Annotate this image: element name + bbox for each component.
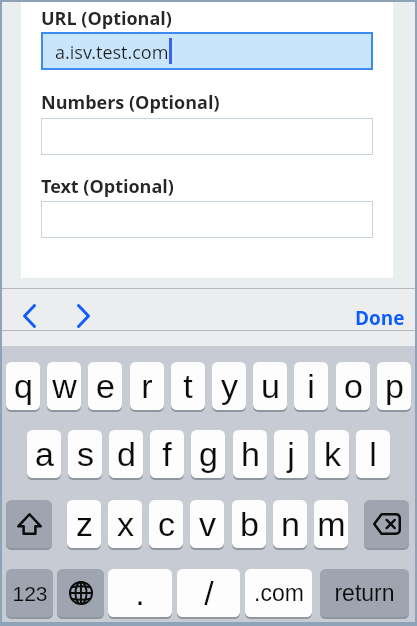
staticText: i (307, 367, 315, 405)
button[interactable]: r (130, 362, 164, 410)
staticText: b (240, 505, 259, 543)
button[interactable]: . (108, 569, 172, 617)
staticText: 123 (12, 582, 48, 605)
staticText: v (199, 505, 216, 543)
button[interactable]: y (212, 362, 246, 410)
staticText: w (52, 367, 77, 405)
staticText: y (221, 367, 238, 405)
staticText: .com (254, 580, 304, 606)
button[interactable]: s (68, 430, 102, 478)
staticText: . (135, 574, 145, 612)
button[interactable]: v (190, 500, 224, 548)
staticText: m (317, 505, 346, 543)
button[interactable]: Done (341, 289, 415, 330)
button[interactable]: m (314, 500, 348, 548)
button[interactable]: u (253, 362, 287, 410)
staticText: l (369, 435, 377, 473)
staticText: q (14, 367, 33, 405)
staticText: / (204, 574, 214, 612)
staticText: c (158, 505, 175, 543)
button[interactable]: k (315, 430, 349, 478)
staticText: x (117, 505, 134, 543)
staticText: Done (355, 305, 405, 331)
button[interactable]: g (191, 430, 225, 478)
button[interactable]: a.isv.test.com (41, 32, 373, 70)
button[interactable]: Backspace (364, 500, 409, 548)
staticText: g (199, 435, 218, 473)
staticText: t (183, 367, 193, 405)
button[interactable]: f (150, 430, 184, 478)
button[interactable]: Return (320, 569, 409, 617)
button[interactable]: z (67, 500, 101, 548)
button[interactable]: d (109, 430, 143, 478)
button[interactable]: a (27, 430, 61, 478)
button[interactable]: l (356, 430, 390, 478)
button[interactable]: / (177, 569, 240, 617)
button[interactable]: w (47, 362, 81, 410)
staticText: return (334, 580, 395, 606)
staticText: a (35, 435, 54, 473)
button[interactable]: p (377, 362, 411, 410)
staticText: URL (Optional) (41, 6, 172, 31)
staticText: Text (Optional) (41, 174, 174, 199)
button[interactable]: c (149, 500, 183, 548)
staticText: a.isv.test.com (55, 40, 169, 65)
staticText: p (385, 367, 404, 405)
button[interactable]: b (232, 500, 266, 548)
staticText: n (281, 505, 300, 543)
button[interactable] (41, 201, 373, 238)
staticText: o (344, 367, 363, 405)
button[interactable]: Previous field (7, 289, 53, 330)
staticText: u (261, 367, 280, 405)
button[interactable]: t (171, 362, 205, 410)
button[interactable]: Numbers (6, 569, 53, 617)
button[interactable]: Next field (62, 289, 108, 330)
button[interactable]: x (108, 500, 142, 548)
staticText: k (324, 435, 341, 473)
button[interactable]: q (6, 362, 40, 410)
button[interactable]: Shift (6, 500, 52, 548)
staticText: j (287, 435, 295, 473)
button[interactable]: i (294, 362, 328, 410)
staticText: e (96, 367, 115, 405)
staticText: z (76, 505, 93, 543)
button[interactable]: e (88, 362, 122, 410)
staticText: f (162, 435, 172, 473)
button[interactable]: o (336, 362, 370, 410)
button[interactable] (41, 118, 373, 155)
button[interactable]: .com (245, 569, 312, 617)
button[interactable]: Switch keyboard (57, 569, 104, 617)
staticText: d (117, 435, 136, 473)
button[interactable]: n (273, 500, 307, 548)
staticText: h (241, 435, 260, 473)
staticText: Numbers (Optional) (41, 90, 220, 115)
staticText: s (77, 435, 94, 473)
staticText: r (141, 367, 153, 405)
button[interactable]: j (274, 430, 308, 478)
button[interactable]: h (233, 430, 267, 478)
